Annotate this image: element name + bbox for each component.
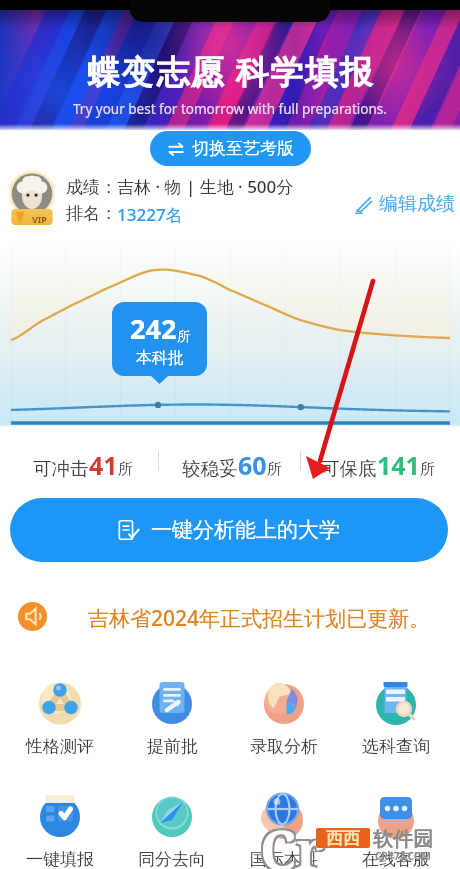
staticText: CR173.COM [375, 849, 432, 863]
staticText: 提前批 [147, 736, 198, 757]
staticText: 所 [118, 460, 133, 479]
button[interactable]: 242 [112, 302, 207, 376]
staticText: Cr [260, 812, 325, 869]
button[interactable]: 较稳妥 [182, 448, 282, 482]
staticText: 较稳妥 [182, 457, 238, 480]
staticText: 在线客服 [362, 849, 430, 869]
staticText: Cr [262, 810, 327, 869]
staticText: 软件园 [373, 827, 433, 852]
button[interactable]: 在线客服 [340, 789, 452, 869]
staticText: 西西 [326, 828, 360, 848]
staticText: VIP [32, 213, 47, 225]
button[interactable]: 性格测评 [4, 676, 116, 757]
staticText: 所 [267, 460, 282, 479]
button[interactable]: 可冲击 [33, 448, 133, 482]
button[interactable]: 切换至艺考版 [150, 131, 311, 166]
staticText: 成绩：吉林 · 物 | 生地 · 500分 [66, 175, 294, 198]
staticText: 本科批 [136, 348, 184, 368]
button[interactable]: 一键分析能上的大学 [10, 498, 448, 562]
button[interactable]: 一键填报 [4, 789, 116, 869]
staticText: 242 [130, 310, 177, 347]
staticText: 蝶变志愿 科学填报 [87, 49, 374, 94]
button[interactable]: 提前批 [116, 676, 228, 757]
staticText: 国际本科 [250, 849, 318, 869]
staticText: 13227名 [117, 203, 183, 226]
staticText: 所 [420, 460, 435, 479]
staticText: 所 [177, 328, 190, 344]
staticText: 性格测评 [26, 736, 94, 757]
button[interactable]: 同分去向 [116, 789, 228, 869]
staticText: 141 [377, 448, 420, 482]
staticText: Cr [258, 814, 323, 869]
staticText: 可冲击 [33, 457, 89, 480]
staticText: 41 [89, 448, 118, 482]
staticText: 选科查询 [362, 736, 430, 757]
button[interactable]: 可保底 [321, 448, 435, 482]
staticText: 一键填报 [26, 849, 94, 869]
staticText: 吉林省2024年正式招生计划已更新。 [88, 604, 431, 633]
staticText: Cr [258, 810, 323, 869]
staticText: 一键分析能上的大学 [151, 517, 340, 543]
staticText: 录取分析 [250, 736, 318, 757]
staticText: 排名： [66, 203, 117, 224]
staticText: Try your best for tomorrow with full pre… [73, 100, 387, 118]
button[interactable]: 编辑成绩 [352, 190, 457, 218]
staticText: 60 [238, 448, 267, 482]
button[interactable]: 录取分析 [228, 676, 340, 757]
button[interactable]: 国际本科 [228, 789, 340, 869]
staticText: 可保底 [321, 457, 377, 480]
staticText: Cr [262, 814, 327, 869]
staticText: 切换至艺考版 [192, 138, 294, 159]
staticText: 同分去向 [138, 849, 206, 869]
staticText: 编辑成绩 [379, 192, 455, 216]
button[interactable]: 选科查询 [340, 676, 452, 757]
